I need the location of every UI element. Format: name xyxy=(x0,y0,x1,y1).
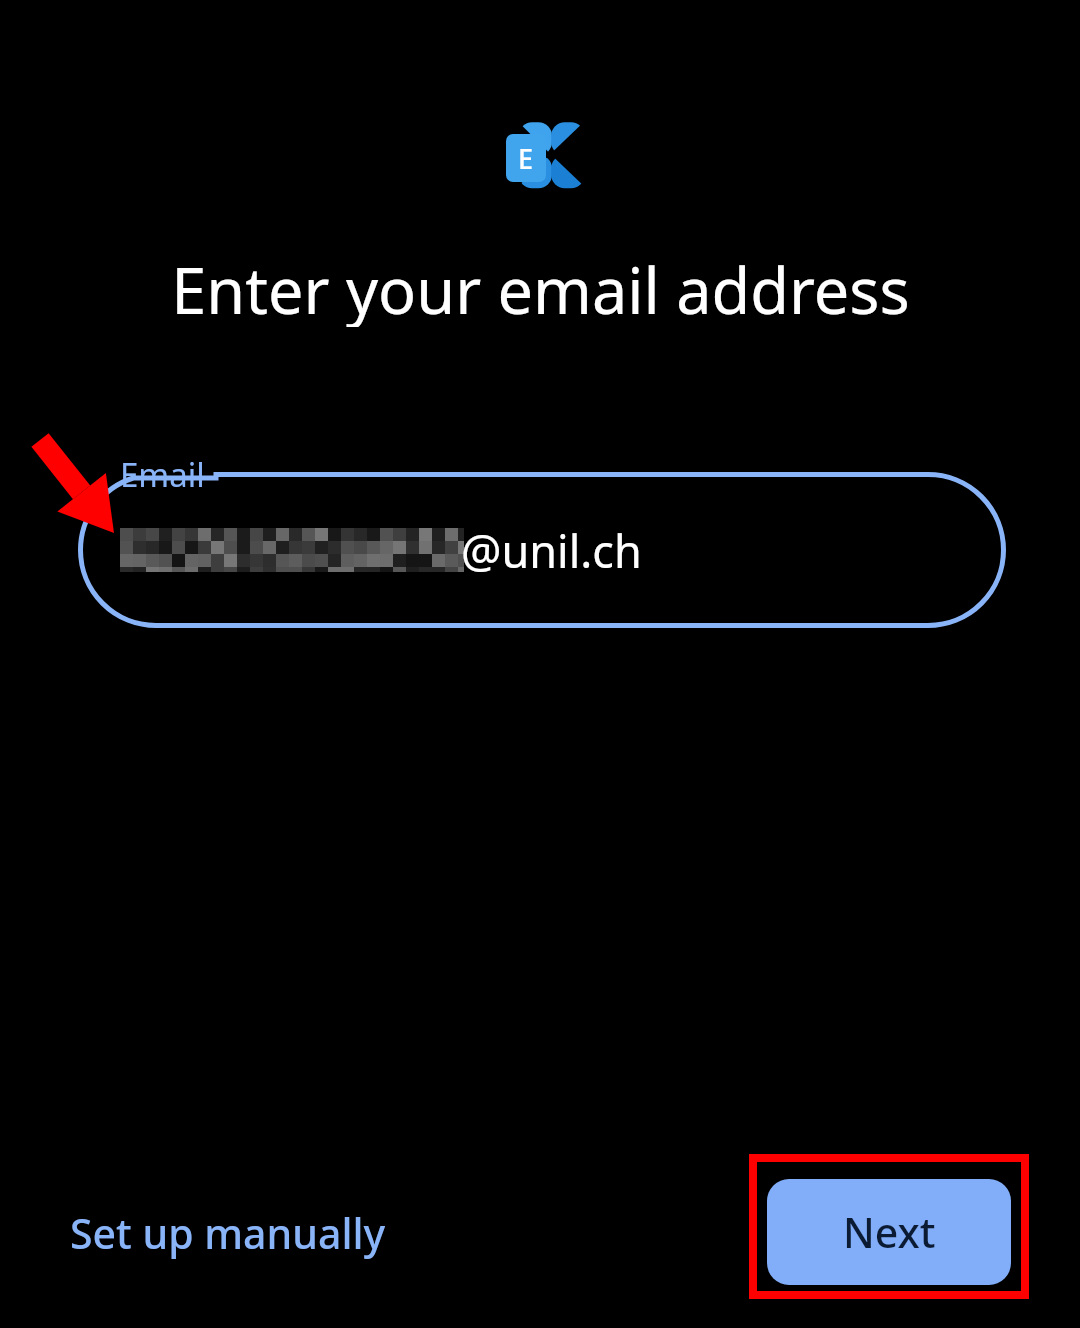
staticText: E xyxy=(518,140,534,177)
staticText: @unil.ch xyxy=(461,520,642,580)
staticText: Next xyxy=(843,1204,936,1260)
staticText: Set up manually xyxy=(70,1205,386,1261)
staticText: Enter your email address xyxy=(171,247,910,327)
button[interactable]: Next xyxy=(767,1179,1011,1285)
button[interactable]: Set up manually xyxy=(55,1192,400,1274)
button[interactable]: @unil.ch xyxy=(78,472,1006,628)
staticText: Email xyxy=(120,452,205,496)
